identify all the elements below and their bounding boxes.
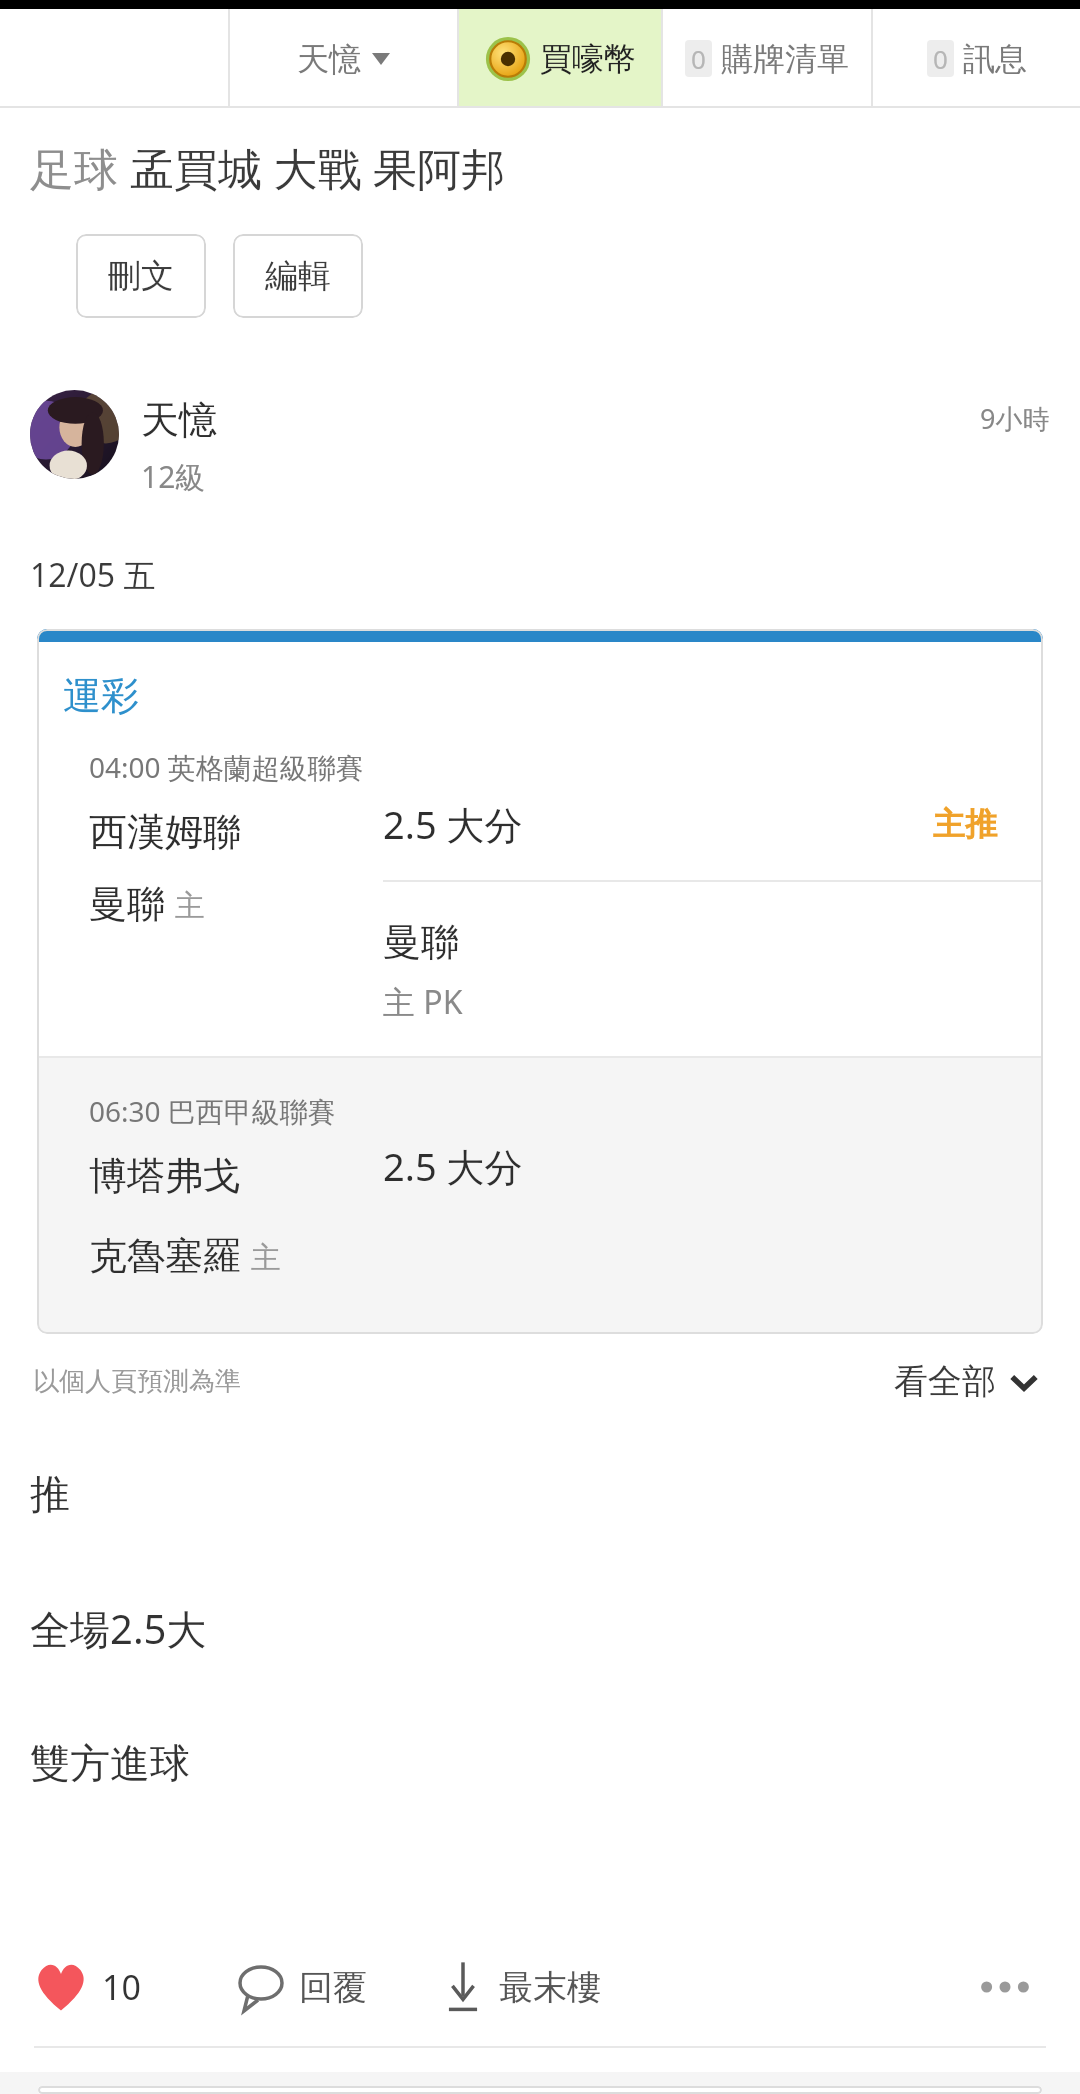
staticText: 主 PK [383, 980, 463, 1024]
staticText: 雙方進球 [30, 1738, 190, 1788]
staticText: 買嚎幣 [540, 39, 636, 79]
other: Like [34, 1962, 88, 2012]
staticText: 曼聯 [383, 918, 459, 966]
button[interactable]: 刪文 [76, 234, 206, 318]
staticText: 10 [102, 1964, 141, 2010]
button[interactable]: 最末樓 [441, 1959, 601, 2015]
staticText: 博塔弗戈 [89, 1152, 241, 1200]
staticText: 主 [251, 1239, 281, 1277]
staticText: 曼聯 [89, 880, 165, 928]
button[interactable]: 天憶 [141, 396, 217, 444]
staticText: 購牌清單 [721, 39, 849, 79]
staticText: 0 [691, 41, 706, 76]
staticText: 足球 [30, 138, 130, 198]
staticText: 主推 [933, 804, 997, 844]
staticText: 運彩 [63, 672, 139, 720]
button[interactable]: 04:00 英格蘭超級聯賽 [37, 748, 1043, 1056]
button[interactable]: 0 [873, 9, 1080, 108]
staticText: 06:30 巴西甲級聯賽 [89, 1092, 336, 1130]
button[interactable]: 回覆 [237, 1962, 367, 2012]
staticText: 天憶 [297, 39, 361, 79]
staticText: 04:00 英格蘭超級聯賽 [89, 748, 364, 786]
staticText: 2.5 大分 [383, 1140, 523, 1192]
staticText: 看全部 [894, 1360, 996, 1403]
staticText: 回覆 [299, 1966, 367, 2009]
button[interactable]: 編輯 [233, 234, 363, 318]
button[interactable]: Like [34, 1962, 141, 2012]
staticText: 西漢姆聯 [89, 808, 241, 856]
staticText: 2.5 大分 [383, 798, 523, 850]
staticText: 9小時 [980, 400, 1050, 437]
button[interactable]: 0 [663, 9, 871, 108]
staticText: 0 [933, 41, 948, 76]
staticText: 最末樓 [499, 1966, 601, 2009]
button[interactable]: 買嚎幣 [459, 9, 661, 108]
button[interactable]: More options [970, 1952, 1040, 2022]
button[interactable]: 06:30 巴西甲級聯賽 [37, 1058, 1043, 1334]
button[interactable]: Avatar [30, 390, 119, 479]
button[interactable]: 天憶 [230, 9, 457, 108]
staticText: 編輯 [265, 255, 331, 297]
staticText: 全場2.5大 [30, 1601, 207, 1656]
staticText: 12/05 五 [30, 553, 156, 597]
staticText: 推 [30, 1469, 70, 1519]
staticText: 刪文 [108, 255, 174, 297]
staticText: 克魯塞羅 [89, 1232, 241, 1280]
staticText: 12級 [141, 456, 206, 497]
staticText: 以個人頁預測為準 [33, 1365, 241, 1398]
staticText: 訊息 [963, 39, 1027, 79]
staticText: 主 [175, 887, 205, 925]
staticText: 孟買城 大戰 果阿邦 [130, 138, 505, 198]
button[interactable]: 看全部 [894, 1360, 1038, 1403]
